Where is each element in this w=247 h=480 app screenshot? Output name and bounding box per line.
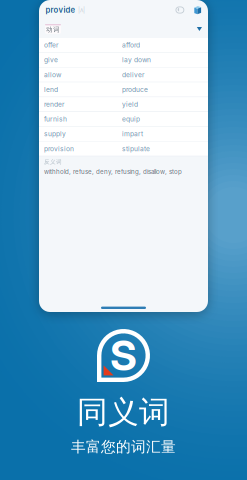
staticText: equip bbox=[122, 115, 140, 123]
button[interactable]: lend bbox=[39, 82, 208, 97]
staticText: provide bbox=[45, 5, 75, 15]
staticText: furnish bbox=[44, 115, 67, 123]
button[interactable]: allow bbox=[39, 68, 208, 82]
button[interactable]: offer bbox=[39, 38, 208, 52]
button[interactable]: furnish bbox=[39, 112, 208, 126]
staticText: lay down bbox=[122, 56, 151, 64]
button[interactable]: 动词 bbox=[39, 20, 208, 38]
button[interactable]: supply bbox=[39, 127, 208, 141]
button[interactable]: Pronounce bbox=[176, 6, 184, 14]
staticText: lend bbox=[44, 85, 58, 94]
button[interactable]: render bbox=[39, 97, 208, 111]
staticText: withhold, refuse, deny, refusing, disall… bbox=[44, 168, 182, 175]
button[interactable]: Dictionary bbox=[194, 5, 201, 15]
staticText: yield bbox=[122, 100, 138, 108]
staticText: render bbox=[44, 100, 65, 108]
staticText: 动词 bbox=[46, 25, 60, 34]
staticText: afford bbox=[122, 41, 140, 49]
staticText: 同义词 bbox=[77, 393, 170, 432]
staticText: offer bbox=[44, 41, 59, 49]
staticText: stipulate bbox=[122, 145, 150, 153]
staticText: S bbox=[110, 330, 137, 380]
staticText: produce bbox=[122, 85, 148, 94]
staticText: allow bbox=[44, 71, 61, 79]
staticText: 丰富您的词汇量 bbox=[71, 438, 176, 456]
staticText: provision bbox=[44, 145, 74, 153]
staticText: impart bbox=[122, 130, 143, 138]
staticText: deliver bbox=[122, 71, 145, 79]
staticText: supply bbox=[44, 130, 66, 138]
button[interactable]: provision bbox=[39, 142, 208, 156]
staticText: |ʌ| bbox=[78, 6, 85, 14]
button[interactable]: give bbox=[39, 53, 208, 67]
staticText: give bbox=[44, 56, 58, 64]
staticText: 反义词 bbox=[44, 158, 62, 165]
